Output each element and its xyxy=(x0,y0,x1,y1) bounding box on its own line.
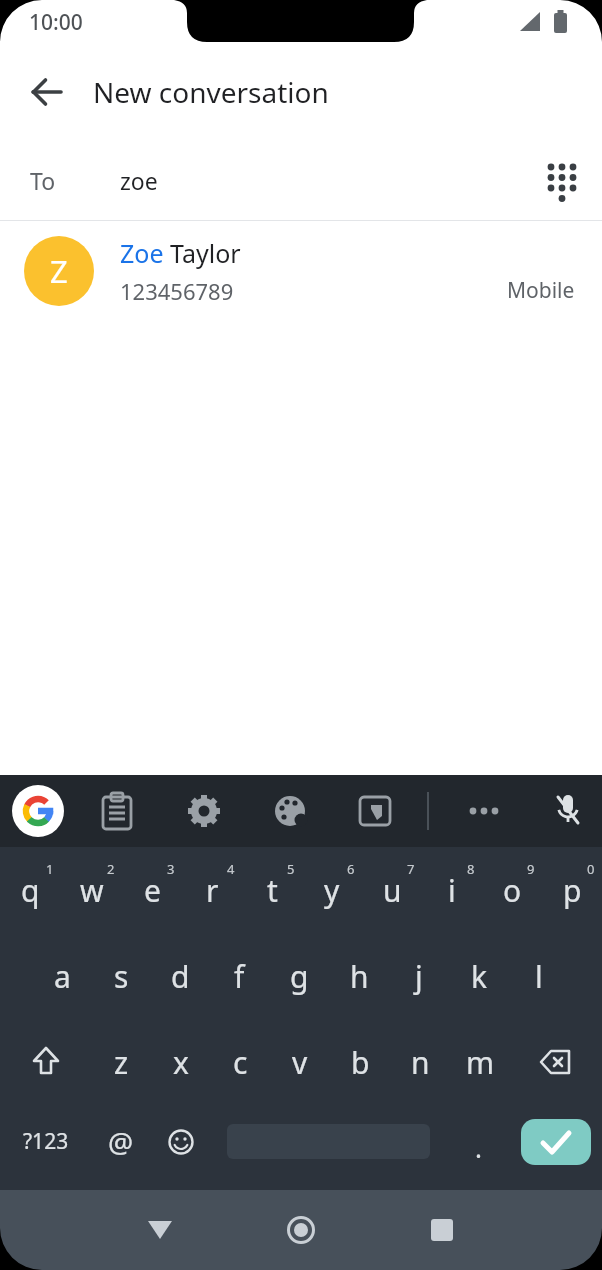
staticText: 10:00 xyxy=(29,8,83,37)
button[interactable]: n xyxy=(390,1019,450,1105)
staticText: v xyxy=(292,1042,308,1083)
button[interactable] xyxy=(418,1206,466,1254)
staticText: h xyxy=(350,956,369,997)
button[interactable] xyxy=(351,787,399,835)
button[interactable]: e xyxy=(122,847,182,933)
staticText: u xyxy=(383,870,402,911)
staticText: Z xyxy=(50,250,68,292)
button[interactable]: ?123 xyxy=(0,1105,92,1190)
button[interactable]: v xyxy=(270,1019,330,1105)
button[interactable] xyxy=(277,1206,325,1254)
staticText: New conversation xyxy=(93,73,329,111)
staticText: y xyxy=(324,870,340,911)
button[interactable] xyxy=(460,787,508,835)
staticText: 2 xyxy=(107,860,115,878)
staticText: b xyxy=(351,1042,370,1083)
button[interactable]: m xyxy=(450,1019,510,1105)
button[interactable]: w xyxy=(61,847,122,933)
button[interactable] xyxy=(180,787,228,835)
button[interactable] xyxy=(0,1019,92,1105)
staticText: 5 xyxy=(287,860,295,878)
button[interactable]: s xyxy=(92,933,151,1019)
staticText: @ xyxy=(108,1123,134,1161)
staticText: 1 xyxy=(46,860,54,878)
button[interactable]: x xyxy=(151,1019,210,1105)
staticText: a xyxy=(54,956,71,997)
button[interactable] xyxy=(150,1105,212,1190)
staticText: 8 xyxy=(467,860,475,878)
staticText: 6 xyxy=(347,860,355,878)
button[interactable]: h xyxy=(329,933,389,1019)
staticText: To xyxy=(30,165,56,196)
button[interactable] xyxy=(136,1206,184,1254)
staticText: k xyxy=(471,956,488,997)
button[interactable] xyxy=(538,156,586,204)
button[interactable] xyxy=(93,787,141,835)
staticText: ?123 xyxy=(23,1127,69,1156)
button[interactable]: p xyxy=(542,847,602,933)
button[interactable]: g xyxy=(269,933,329,1019)
button[interactable] xyxy=(544,787,592,835)
button[interactable]: @ xyxy=(92,1105,150,1190)
staticText: c xyxy=(233,1042,248,1083)
staticText: t xyxy=(267,870,278,911)
button[interactable]: . xyxy=(446,1105,510,1190)
staticText: 7 xyxy=(407,860,415,878)
staticText: zoe xyxy=(120,165,158,196)
staticText: j xyxy=(415,956,423,997)
staticText: i xyxy=(448,870,456,911)
staticText: r xyxy=(206,870,219,911)
staticText: e xyxy=(144,870,161,911)
button[interactable]: f xyxy=(210,933,269,1019)
staticText: m xyxy=(466,1042,495,1083)
button[interactable]: o xyxy=(482,847,542,933)
staticText: f xyxy=(234,956,245,997)
staticText: Zoe Taylor xyxy=(120,236,241,270)
staticText: p xyxy=(563,870,582,911)
staticText: Mobile xyxy=(507,276,575,305)
button[interactable] xyxy=(510,1019,602,1105)
staticText: 0 xyxy=(587,860,595,878)
staticText: 4 xyxy=(227,860,235,878)
staticText: o xyxy=(503,870,522,911)
button[interactable] xyxy=(266,787,314,835)
button[interactable]: q xyxy=(0,847,61,933)
staticText: l xyxy=(535,956,543,997)
button[interactable]: l xyxy=(509,933,569,1019)
button[interactable]: z xyxy=(92,1019,151,1105)
button[interactable]: c xyxy=(210,1019,270,1105)
button[interactable]: k xyxy=(449,933,509,1019)
button[interactable]: d xyxy=(151,933,210,1019)
staticText: x xyxy=(173,1042,189,1083)
staticText: z xyxy=(114,1042,129,1083)
staticText: d xyxy=(171,956,190,997)
staticText: s xyxy=(114,956,129,997)
staticText: 3 xyxy=(167,860,175,878)
button[interactable]: b xyxy=(330,1019,390,1105)
button[interactable]: u xyxy=(362,847,422,933)
button[interactable]: a xyxy=(33,933,92,1019)
button[interactable]: i xyxy=(422,847,482,933)
button[interactable]: y xyxy=(302,847,362,933)
staticText: . xyxy=(475,1130,482,1165)
button[interactable]: j xyxy=(389,933,449,1019)
staticText: q xyxy=(21,870,40,911)
staticText: g xyxy=(290,956,309,997)
button[interactable] xyxy=(521,1119,591,1165)
button[interactable]: Z xyxy=(0,221,602,321)
button[interactable]: r xyxy=(182,847,242,933)
button[interactable] xyxy=(12,785,64,837)
button[interactable]: t xyxy=(242,847,302,933)
staticText: 9 xyxy=(527,860,535,878)
staticText: n xyxy=(411,1042,430,1083)
button[interactable] xyxy=(23,68,71,116)
staticText: w xyxy=(80,870,104,911)
staticText: 123456789 xyxy=(120,276,234,306)
